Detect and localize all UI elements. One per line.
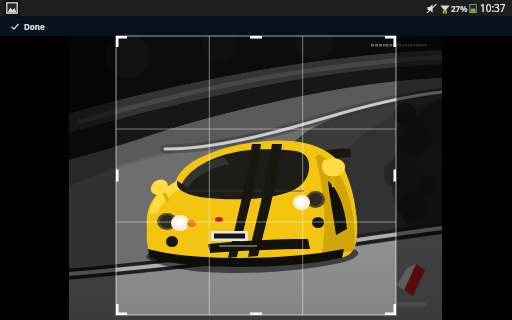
button[interactable]: Done (0, 16, 57, 36)
staticText: 27% (451, 3, 468, 14)
staticText: Done (24, 21, 45, 32)
staticText: 10:37 (480, 1, 506, 15)
